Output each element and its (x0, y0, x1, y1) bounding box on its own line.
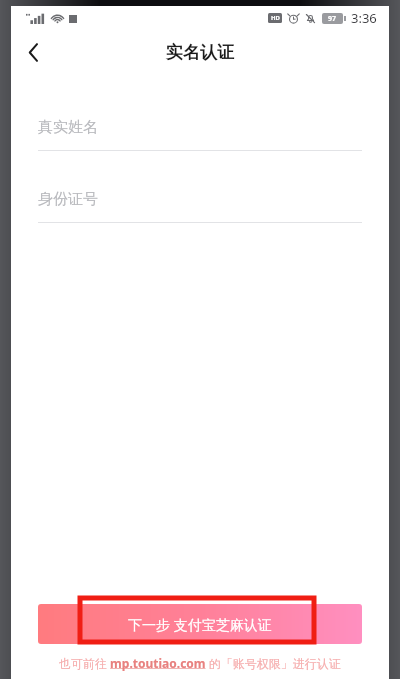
button[interactable]: 返回 (11, 30, 55, 74)
button[interactable]: 也可前往 mp.toutiao.com 的「账号权限」进行认证 (11, 655, 389, 671)
button[interactable]: 真实姓名 (11, 112, 389, 151)
button[interactable]: 身份证号 (11, 184, 389, 223)
staticText: 97 (328, 14, 337, 24)
button[interactable]: 下一步 支付宝芝麻认证 (38, 604, 362, 644)
staticText: 下一步 支付宝芝麻认证 (128, 615, 272, 634)
staticText: 也可前往 mp.toutiao.com 的「账号权限」进行认证 (59, 655, 341, 671)
staticText: 实名认证 (166, 42, 234, 63)
staticText: HD (271, 14, 280, 22)
staticText: 3:36 (351, 9, 377, 27)
staticText: 真实姓名 (38, 118, 98, 137)
staticText: 身份证号 (38, 190, 98, 209)
